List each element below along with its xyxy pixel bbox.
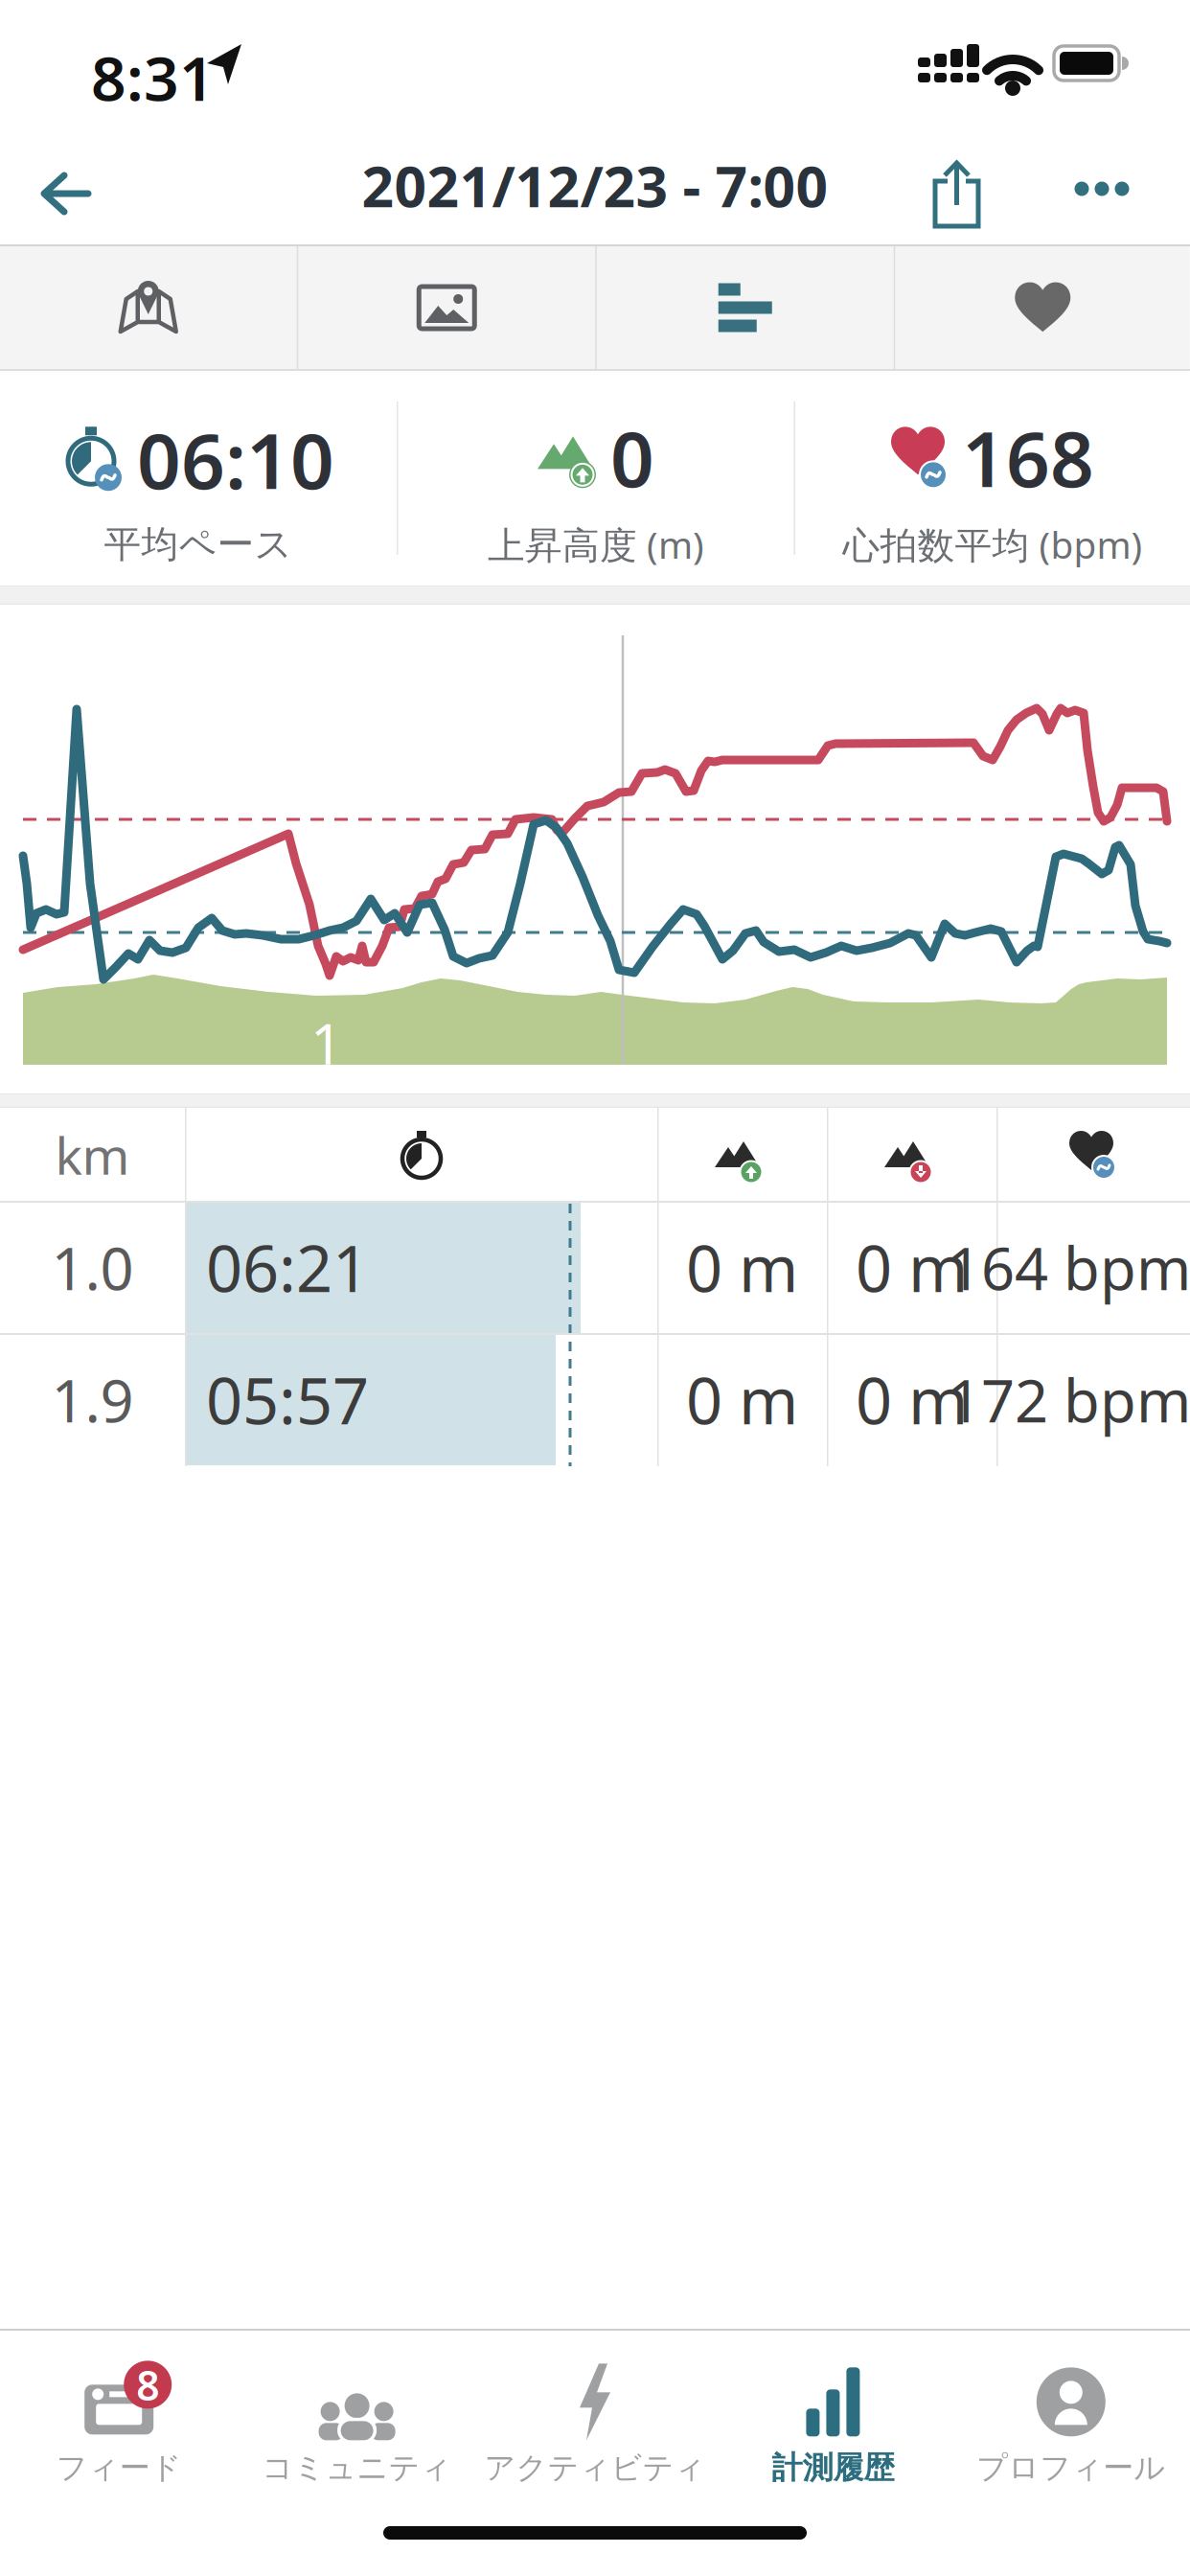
- staticText: アクティビティ: [484, 2449, 706, 2486]
- staticText: 0 m: [686, 1225, 798, 1310]
- staticText: 0 m: [856, 1357, 968, 1442]
- staticText: 1.0: [51, 1228, 134, 1306]
- button[interactable]: Stats: [597, 246, 894, 369]
- staticText: 172 bpm: [948, 1361, 1190, 1439]
- staticText: km: [55, 1121, 130, 1189]
- staticText: 164 bpm: [948, 1228, 1190, 1306]
- staticText: 8:31: [91, 36, 215, 118]
- staticText: 1.9: [51, 1361, 134, 1439]
- button[interactable]: Activity: [476, 2329, 714, 2507]
- staticText: 1: [310, 1005, 343, 1080]
- staticText: 06:10: [137, 408, 334, 510]
- button[interactable]: Back: [0, 126, 134, 244]
- button[interactable]: Feed: [0, 2329, 238, 2507]
- staticText: 8: [136, 2357, 159, 2412]
- staticText: 0 m: [686, 1357, 798, 1442]
- button[interactable]: Photos: [298, 246, 595, 369]
- button[interactable]: History: [714, 2329, 952, 2507]
- staticText: 上昇高度 (m): [488, 520, 704, 569]
- staticText: フィード: [56, 2449, 182, 2486]
- staticText: 心拍数平均 (bpm): [843, 520, 1143, 569]
- staticText: 06:21: [206, 1225, 369, 1310]
- staticText: 0: [610, 407, 654, 508]
- button[interactable]: Like: [895, 246, 1190, 369]
- staticText: 168: [962, 407, 1094, 508]
- staticText: プロフィール: [977, 2449, 1165, 2486]
- button[interactable]: Map: [0, 246, 297, 369]
- staticText: 計測履歴: [772, 2449, 894, 2486]
- staticText: 05:57: [206, 1357, 369, 1442]
- staticText: 2021/12/23 - 7:00: [362, 148, 828, 223]
- button[interactable]: More: [1064, 126, 1190, 244]
- staticText: 0 m: [856, 1225, 968, 1310]
- staticText: 平均ペース: [104, 522, 293, 567]
- button[interactable]: Share: [904, 126, 1009, 244]
- button[interactable]: Profile: [952, 2329, 1190, 2507]
- button[interactable]: Community: [238, 2329, 476, 2507]
- staticText: コミュニティ: [262, 2449, 452, 2486]
